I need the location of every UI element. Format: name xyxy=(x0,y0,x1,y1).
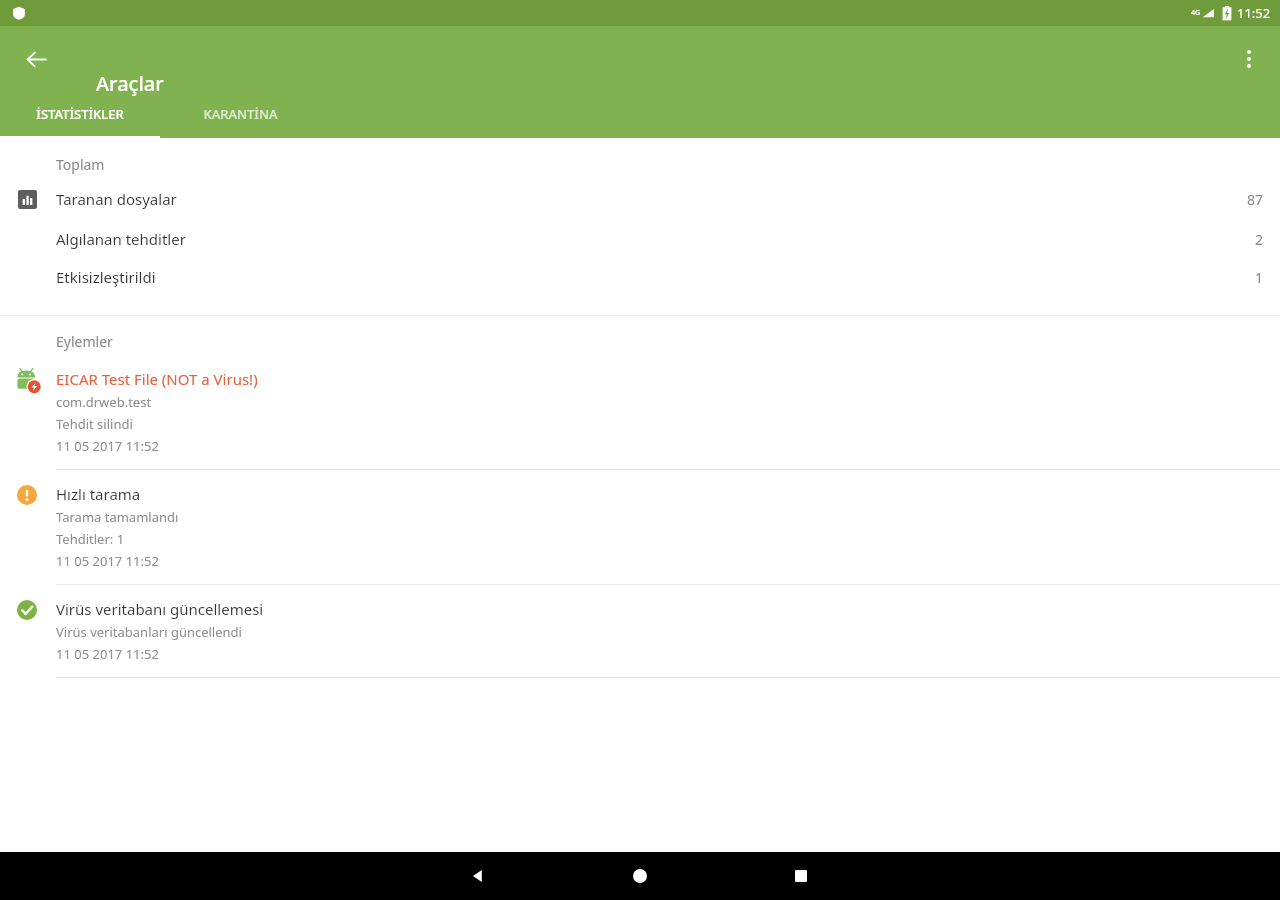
staticText: Etkisizleştirildi xyxy=(56,267,156,287)
staticText: 4G xyxy=(1191,8,1201,18)
staticText: 11:52 xyxy=(1237,4,1271,22)
staticText: 11 05 2017 11:52 xyxy=(56,437,159,455)
staticText: Eylemler xyxy=(56,332,113,351)
staticText: Virüs veritabanları güncellendi xyxy=(56,623,242,641)
staticText: Tehdit silindi xyxy=(56,415,133,433)
button[interactable]: KARANTİNA xyxy=(160,90,320,138)
button[interactable]: Back xyxy=(12,35,60,83)
button[interactable]: Taranan dosyalar xyxy=(0,178,1280,220)
button[interactable]: Back xyxy=(454,852,502,900)
button[interactable]: Hızlı tarama xyxy=(0,470,1280,584)
staticText: Taranan dosyalar xyxy=(56,189,177,209)
staticText: İSTATİSTİKLER xyxy=(36,105,124,123)
staticText: Araçlar xyxy=(96,70,164,97)
staticText: Virüs veritabanı güncellemesi xyxy=(56,599,264,619)
button[interactable]: Algılanan tehditler xyxy=(0,220,1280,258)
staticText: KARANTİNA xyxy=(203,105,278,123)
staticText: Tarama tamamlandı xyxy=(56,508,179,526)
staticText: Algılanan tehditler xyxy=(56,229,186,249)
button[interactable]: Home xyxy=(616,852,664,900)
staticText: 11 05 2017 11:52 xyxy=(56,645,159,663)
staticText: com.drweb.test xyxy=(56,393,152,411)
staticText: 87 xyxy=(1247,190,1264,209)
button[interactable]: Etkisizleştirildi xyxy=(0,258,1280,296)
staticText: Hızlı tarama xyxy=(56,484,141,504)
button[interactable]: Virüs veritabanı güncellemesi xyxy=(0,585,1280,677)
button[interactable]: İSTATİSTİKLER xyxy=(0,90,160,138)
staticText: 2 xyxy=(1255,230,1264,249)
button[interactable]: EICAR Test File (NOT a Virus!) xyxy=(0,355,1280,469)
staticText: Toplam xyxy=(56,155,105,174)
staticText: Tehditler: 1 xyxy=(56,530,125,548)
button[interactable]: More options xyxy=(1225,35,1273,83)
button[interactable]: Recent apps xyxy=(777,852,825,900)
staticText: 11 05 2017 11:52 xyxy=(56,552,159,570)
staticText: EICAR Test File (NOT a Virus!) xyxy=(56,369,258,389)
staticText: 1 xyxy=(1255,268,1264,287)
